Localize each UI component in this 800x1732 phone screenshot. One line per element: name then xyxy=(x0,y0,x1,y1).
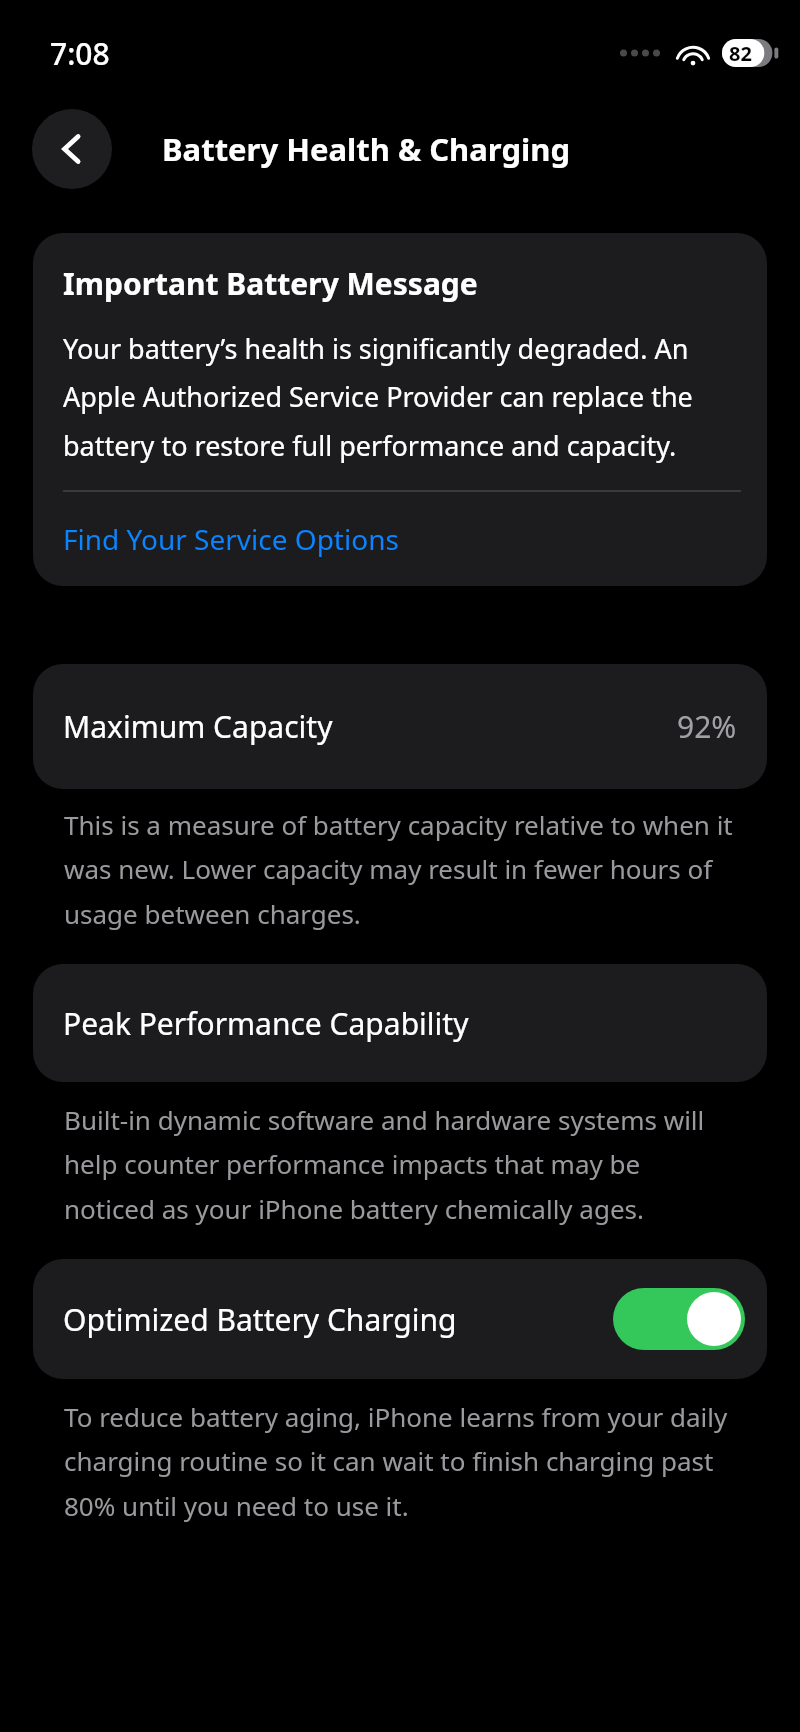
button[interactable]: Find Your Service Options xyxy=(63,520,741,558)
staticText: Optimized Battery Charging xyxy=(63,1299,613,1340)
staticText: Maximum Capacity xyxy=(63,706,677,747)
staticText: Peak Performance Capability xyxy=(63,1003,469,1044)
button[interactable]: Back xyxy=(32,109,112,189)
staticText: 7:08 xyxy=(50,33,110,74)
button[interactable]: Maximum Capacity xyxy=(33,664,767,789)
button[interactable]: Optimized Battery Charging xyxy=(33,1259,767,1379)
staticText: Built-in dynamic software and hardware s… xyxy=(64,1102,736,1227)
button[interactable]: Peak Performance Capability xyxy=(33,964,767,1082)
staticText: Battery Health & Charging xyxy=(162,128,570,170)
button[interactable]: Optimized Battery Charging toggle, on xyxy=(613,1288,745,1350)
staticText: 92% xyxy=(677,706,737,747)
staticText: To reduce battery aging, iPhone learns f… xyxy=(64,1399,736,1524)
staticText: This is a measure of battery capacity re… xyxy=(64,807,736,932)
staticText: Find Your Service Options xyxy=(63,520,399,558)
staticText: Your battery’s health is significantly d… xyxy=(63,330,741,464)
staticText: Important Battery Message xyxy=(63,263,478,304)
staticText: 82 xyxy=(729,40,752,67)
